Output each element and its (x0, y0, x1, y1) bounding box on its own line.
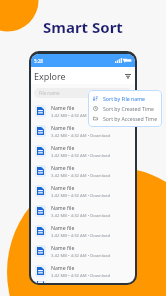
staticText: Name file (51, 264, 75, 271)
button[interactable]: Name file (31, 181, 135, 201)
staticText: Name file (51, 164, 75, 171)
button[interactable]: Name file (31, 261, 135, 281)
staticText: 3.42 MB • 4:32 AM • Download (51, 113, 111, 119)
button[interactable]: Name file (31, 161, 135, 181)
staticText: Sort by File name (103, 95, 145, 102)
button[interactable]: Name file (31, 241, 135, 261)
staticText: Smart Sort (43, 17, 123, 37)
staticText: Name file (51, 204, 75, 211)
staticText: 3.42 MB • 4:32 AM • Download (51, 173, 111, 179)
staticText: 3.42 MB • 4:32 AM • Download (51, 233, 111, 239)
staticText: 3.42 MB • 4:32 AM • Download (51, 193, 111, 199)
staticText: 3.42 MB • 4:32 AM • Download (51, 253, 111, 259)
button[interactable]: Sort by Accessed Time (88, 113, 162, 123)
button[interactable]: Sort by File name (88, 93, 162, 103)
staticText: 3.42 MB • 4:32 AM • Download (51, 273, 111, 279)
button[interactable]: Name file (31, 221, 135, 241)
staticText: 3.42 MB • 4:32 AM • Download (51, 213, 111, 219)
staticText: Explore (34, 70, 66, 82)
button[interactable]: Name file (31, 281, 135, 283)
staticText: 3.42 MB • 4:32 AM • Download (51, 133, 111, 139)
staticText: Name file (51, 124, 75, 131)
staticText: Name file (51, 104, 75, 111)
staticText: Name file (51, 144, 75, 151)
staticText: Sort by Accessed Time (103, 115, 158, 122)
button[interactable]: Sort options (123, 71, 132, 80)
staticText: File name (39, 90, 60, 96)
staticText: 5:28 (34, 58, 43, 64)
staticText: 3.42 MB • 4:32 AM • Download (51, 153, 111, 159)
button[interactable]: Name file (31, 121, 135, 141)
button[interactable]: File name (34, 88, 132, 98)
staticText: Name file (51, 244, 75, 251)
button[interactable]: Sort by Created Time (88, 103, 162, 113)
button[interactable]: Name file (31, 141, 135, 161)
staticText: Name file (51, 224, 75, 231)
button[interactable]: Name file (31, 101, 135, 121)
staticText: Name file (51, 184, 75, 191)
button[interactable]: Name file (31, 201, 135, 221)
staticText: Sort by Created Time (103, 105, 154, 112)
